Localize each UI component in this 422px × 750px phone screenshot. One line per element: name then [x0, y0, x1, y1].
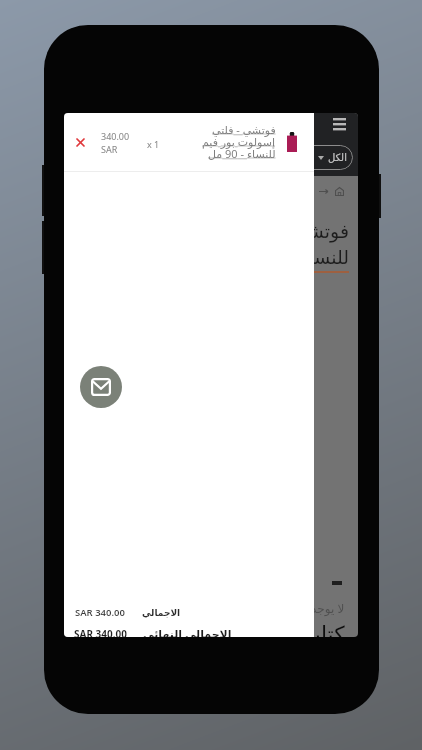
staticText: x 1	[147, 138, 160, 150]
staticText: ا	[312, 187, 315, 196]
button[interactable]: Menu	[325, 113, 354, 134]
staticText: SAR 340.00	[75, 606, 125, 619]
staticText: 340.00	[101, 130, 130, 142]
staticText: الكل	[328, 152, 347, 164]
staticText: الاجمالي النهائي	[143, 626, 232, 637]
staticText: للنساء - 90 مل	[208, 146, 276, 161]
button[interactable]: Messages	[80, 366, 122, 408]
staticText: الاجمالي	[142, 608, 181, 618]
staticText: SAR	[101, 143, 118, 155]
button[interactable]: Home	[335, 187, 344, 196]
staticText: كتابة	[303, 622, 345, 637]
staticText: لا يوجد	[311, 600, 345, 616]
button[interactable]: Remove item	[70, 132, 90, 152]
staticText: SAR 340.00	[74, 627, 127, 637]
staticText: فوتشي - فلتي إسولوت بور فيم	[108, 218, 349, 244]
staticText: إسولوت بور فيم	[202, 134, 276, 149]
button[interactable]: الكل	[292, 145, 353, 170]
staticText: للنساء - 90 مل	[232, 244, 349, 270]
staticText: فوتشي - فلتي	[212, 122, 276, 137]
